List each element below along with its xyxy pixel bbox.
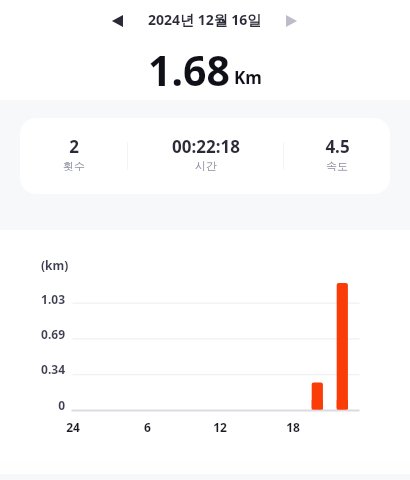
staticText: (km) [41,257,69,273]
staticText: Km [234,66,262,89]
staticText: 00:22:18 [172,135,240,158]
staticText: 속도 [326,159,348,173]
staticText: 4.5 [325,135,350,158]
button[interactable]: 00:22:18 [128,118,283,194]
button[interactable]: Next day [276,6,306,36]
button[interactable]: 2 [20,118,127,194]
staticText: 0.34 [41,361,65,377]
staticText: 1.03 [41,291,65,307]
staticText: 18 [286,419,300,435]
staticText: 24 [66,419,80,435]
staticText: 0 [58,397,65,413]
staticText: 시간 [195,159,217,173]
staticText: 6 [144,419,151,435]
staticText: 0.69 [41,326,65,342]
button[interactable]: 4.5 [284,118,390,194]
staticText: 2 [69,135,79,158]
staticText: 1.68 [148,42,230,98]
staticText: 2024년 12월 16일 [148,10,262,29]
staticText: 12 [213,419,227,435]
button[interactable]: Previous day [103,6,133,36]
staticText: 횟수 [63,159,85,173]
